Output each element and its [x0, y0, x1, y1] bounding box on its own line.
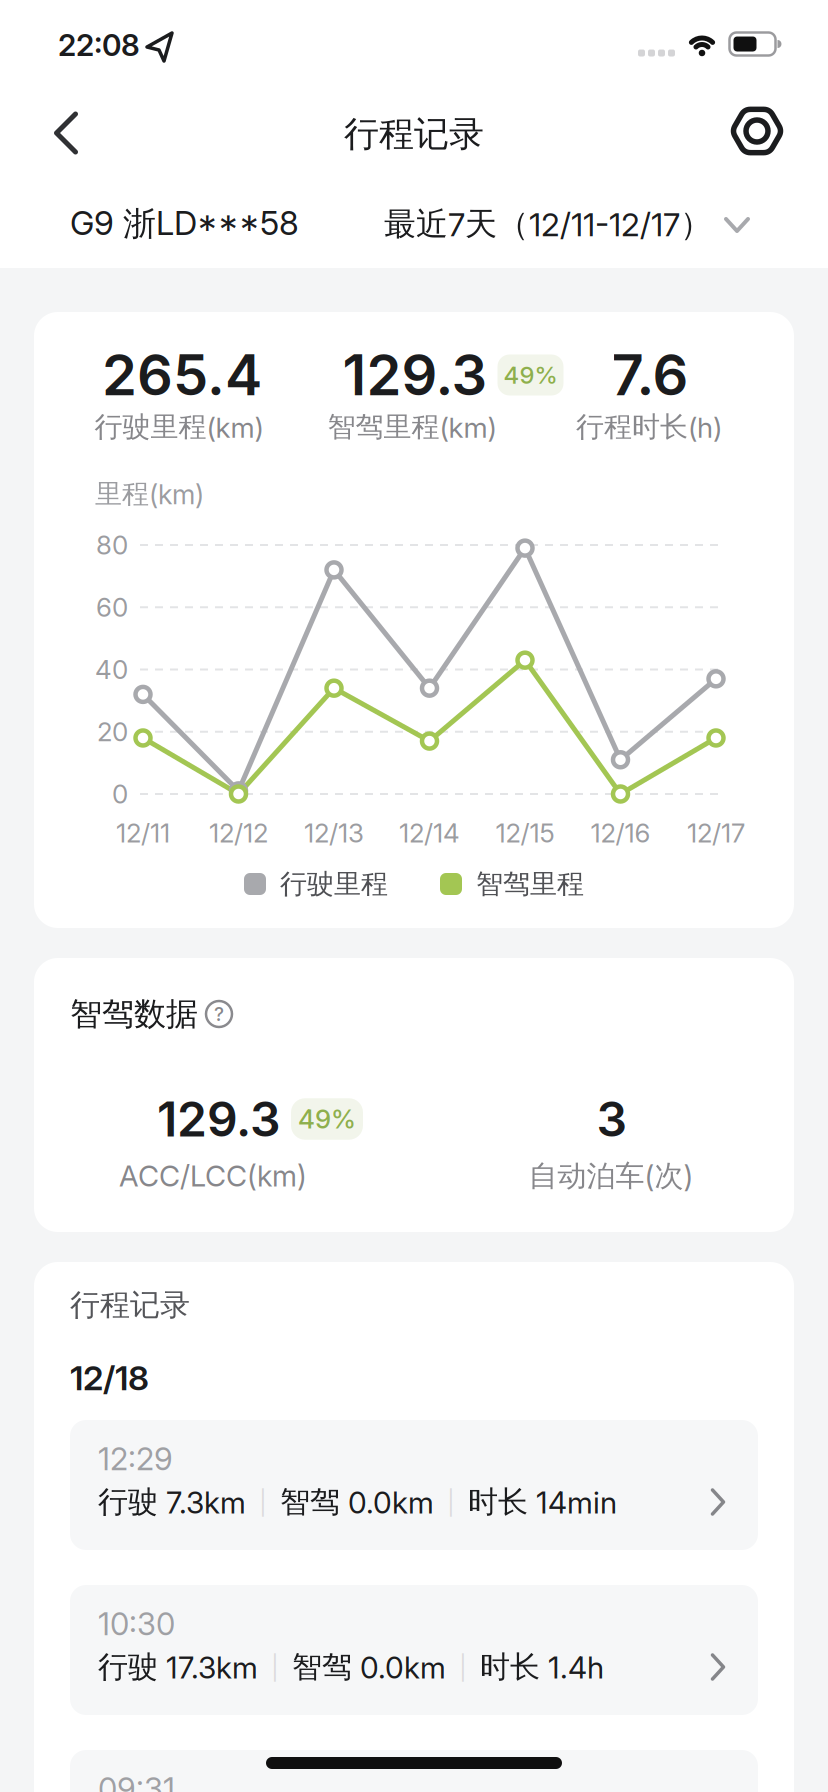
staticText: 49%	[298, 1103, 356, 1135]
staticText: 22:08	[58, 27, 140, 63]
staticText: 12/15	[495, 817, 554, 849]
staticText: 265.4	[102, 341, 262, 409]
button[interactable]: Settings	[724, 98, 790, 164]
staticText: 12/13	[304, 817, 364, 849]
button[interactable]: 12:29	[70, 1420, 758, 1550]
staticText: 智驾里程(km)	[327, 409, 496, 445]
staticText: 行程记录	[344, 112, 484, 156]
staticText: 12/11	[116, 817, 170, 849]
staticText: 智驾里程	[476, 867, 584, 901]
button[interactable]: 10:30	[70, 1585, 758, 1715]
staticText: 行驶里程(km)	[94, 409, 263, 445]
staticText: ACC/LCC(km)	[119, 1158, 307, 1194]
staticText: |	[447, 1487, 455, 1516]
staticText: 行程时长(h)	[576, 409, 722, 445]
staticText: 7.6	[611, 341, 688, 409]
staticText: 49%	[503, 360, 557, 389]
staticText: 12/14	[399, 817, 460, 849]
staticText: 40	[95, 654, 128, 685]
staticText: 行程记录	[70, 1286, 190, 1324]
staticText: 12/17	[687, 817, 745, 849]
staticText: 129.3	[157, 1090, 281, 1148]
staticText: 12/16	[590, 817, 650, 849]
staticText: 行驶 7.3km	[98, 1483, 246, 1521]
staticText: |	[271, 1652, 279, 1681]
staticText: 80	[96, 529, 128, 561]
staticText: |	[459, 1652, 467, 1681]
staticText: 自动泊车(次)	[528, 1158, 693, 1194]
staticText: 129.3	[342, 341, 487, 409]
staticText: 智驾数据	[70, 994, 198, 1034]
button[interactable]: Help	[204, 999, 234, 1029]
staticText: |	[259, 1487, 267, 1516]
staticText: 10:30	[98, 1605, 175, 1643]
staticText: 12/18	[70, 1357, 149, 1398]
staticText: 0	[112, 778, 128, 810]
staticText: 时长 1.4h	[480, 1648, 604, 1686]
staticText: G9 浙LD***58	[70, 203, 299, 245]
staticText: ?	[214, 1002, 224, 1025]
staticText: 12/12	[209, 817, 268, 849]
staticText: 最近7天（12/11-12/17）	[384, 204, 712, 244]
button[interactable]: 09:31	[70, 1750, 758, 1792]
staticText: 里程(km)	[95, 477, 204, 511]
staticText: 3	[596, 1090, 627, 1148]
button[interactable]: Back	[33, 100, 99, 166]
staticText: 09:31	[98, 1770, 175, 1792]
staticText: 12:29	[98, 1440, 173, 1478]
staticText: 20	[97, 716, 128, 747]
staticText: 时长 14min	[468, 1483, 617, 1521]
staticText: 智驾 0.0km	[280, 1483, 434, 1521]
staticText: 60	[96, 591, 128, 623]
staticText: 行驶里程	[280, 867, 388, 901]
button[interactable]: 最近7天（12/11-12/17）	[190, 189, 750, 259]
staticText: 智驾 0.0km	[292, 1648, 446, 1686]
staticText: 行驶 17.3km	[98, 1648, 258, 1686]
